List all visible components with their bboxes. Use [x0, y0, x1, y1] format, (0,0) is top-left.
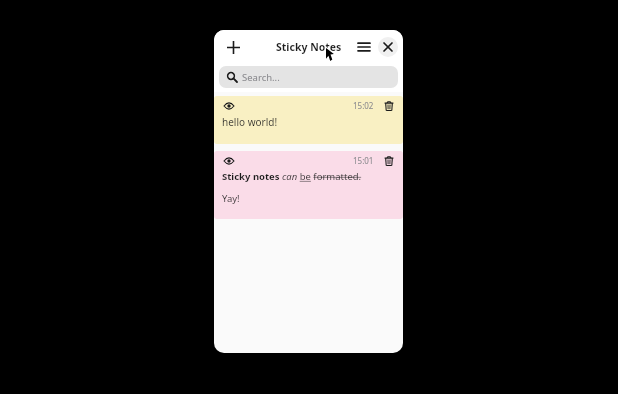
staticText: Sticky Notes [276, 40, 342, 54]
button[interactable]: Preview note [214, 151, 403, 219]
button[interactable]: New note [220, 34, 246, 60]
button[interactable]: Close [378, 37, 398, 57]
button[interactable]: Preview note [221, 98, 236, 113]
button[interactable]: Search... [219, 66, 398, 88]
staticText: Yay! [222, 192, 240, 205]
button[interactable]: Preview note [221, 153, 236, 168]
staticText: 15:01 [353, 155, 374, 166]
staticText: Search... [242, 71, 280, 84]
staticText: 15:02 [353, 100, 374, 111]
button[interactable]: Delete note [381, 153, 396, 168]
button[interactable]: Preview note [214, 96, 403, 144]
staticText: Sticky notes can be formatted. [222, 170, 362, 183]
staticText: hello world! [222, 115, 278, 129]
button[interactable]: Menu [352, 35, 376, 59]
button[interactable]: Delete note [381, 98, 396, 113]
